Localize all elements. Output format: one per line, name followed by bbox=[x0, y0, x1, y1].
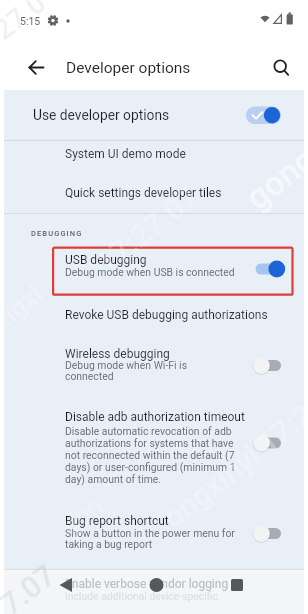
staticText: 7.07 bbox=[0, 557, 62, 614]
staticText: 5:15 bbox=[20, 15, 41, 27]
staticText: USB debugging bbox=[65, 253, 147, 267]
staticText: day) amount of time. bbox=[65, 473, 162, 485]
staticText: Use developer options bbox=[33, 107, 170, 123]
button[interactable] bbox=[264, 51, 296, 83]
button[interactable] bbox=[40, 572, 92, 600]
staticText: DEBUGGING bbox=[31, 229, 83, 238]
staticText: Show a button in the power menu for bbox=[65, 527, 235, 539]
staticText: ongxi bbox=[0, 278, 48, 341]
staticText: gon bbox=[55, 489, 109, 541]
staticText: days) or user-configured (minimum 1 bbox=[65, 461, 236, 473]
button[interactable] bbox=[130, 572, 182, 600]
staticText: Debug mode when USB is connected bbox=[65, 266, 235, 278]
staticText: ongxinyi 17:2 bbox=[156, 396, 308, 535]
button[interactable] bbox=[20, 51, 52, 83]
button[interactable]: Revoke USB debugging authorizations bbox=[4, 295, 304, 335]
staticText: taking a bug report bbox=[65, 538, 153, 550]
button[interactable]: Bug report shortcut bbox=[4, 490, 304, 562]
staticText: System UI demo mode bbox=[65, 147, 186, 161]
button[interactable]: Wireless debugging bbox=[4, 335, 304, 390]
button[interactable] bbox=[211, 572, 263, 600]
staticText: Bug report shortcut bbox=[65, 514, 169, 528]
button[interactable]: Use developer options bbox=[4, 90, 304, 140]
button[interactable]: Disable adb authorization timeout bbox=[4, 390, 304, 490]
staticText: Include additional device-specific bbox=[65, 590, 219, 602]
button[interactable]: System UI demo mode bbox=[4, 141, 304, 177]
staticText: 17:27.07 bbox=[90, 179, 205, 280]
staticText: Enable verbose vendor logging bbox=[65, 577, 229, 591]
staticText: gong bbox=[238, 138, 308, 217]
staticText: Disable automatic revocation of adb bbox=[65, 425, 232, 437]
staticText: 27.0 bbox=[0, 0, 52, 47]
staticText: connected bbox=[65, 370, 114, 382]
staticText: Wireless debugging bbox=[65, 347, 170, 361]
staticText: Disable adb authorization timeout bbox=[65, 410, 245, 424]
staticText: Developer options bbox=[66, 59, 191, 77]
button[interactable]: USB debugging bbox=[4, 247, 304, 295]
staticText: Quick settings developer tiles bbox=[65, 186, 222, 200]
staticText: Debug mode when Wi-Fi is bbox=[65, 359, 187, 371]
staticText: authorizations for systems that have bbox=[65, 437, 234, 449]
staticText: not reconnected within the default (7 bbox=[65, 449, 235, 461]
button[interactable]: Quick settings developer tiles bbox=[4, 177, 304, 213]
staticText: Revoke USB debugging authorizations bbox=[65, 308, 268, 322]
